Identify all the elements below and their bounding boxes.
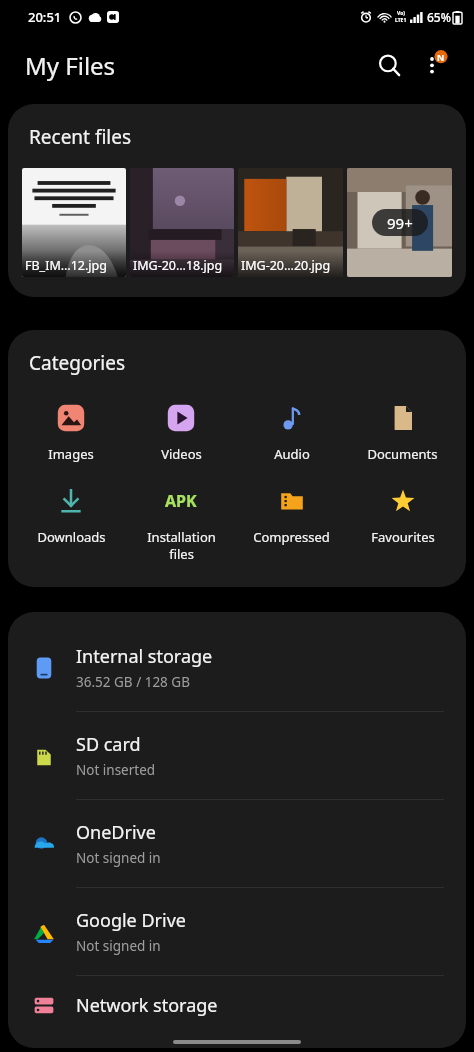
button[interactable]: Google Drive xyxy=(8,888,466,975)
button[interactable]: OneDrive xyxy=(8,800,466,887)
staticText: Network storage xyxy=(76,993,218,1018)
button[interactable]: Favourites xyxy=(347,481,458,548)
button[interactable]: 99+ xyxy=(347,168,452,277)
staticText: IMG-20…18.jpg xyxy=(133,257,223,274)
button[interactable]: SD card xyxy=(8,712,466,799)
staticText: IMG-20…20.jpg xyxy=(241,257,331,274)
staticText: SD card xyxy=(76,732,141,757)
staticText: Videos xyxy=(161,445,202,463)
staticText: OneDrive xyxy=(76,820,156,845)
button[interactable]: Downloads xyxy=(16,481,126,548)
staticText: Images xyxy=(48,445,94,463)
staticText: Compressed xyxy=(253,528,330,546)
staticText: 36.52 GB / 128 GB xyxy=(76,673,190,691)
button[interactable]: Videos xyxy=(126,398,236,465)
staticText: Internal storage xyxy=(76,644,213,669)
staticText: FB_IM…12.jpg xyxy=(25,257,107,274)
button[interactable]: Compressed xyxy=(236,481,347,548)
staticText: Installation files xyxy=(147,528,216,563)
staticText: LTE1 xyxy=(395,17,407,24)
staticText: APK xyxy=(165,490,197,512)
staticText: Vo) xyxy=(397,10,405,17)
staticText: Favourites xyxy=(371,528,435,546)
staticText: Not signed in xyxy=(76,849,161,867)
staticText: Categories xyxy=(29,350,125,376)
staticText: 20:51 xyxy=(28,8,62,26)
button[interactable]: Search xyxy=(366,42,412,88)
button[interactable]: Audio xyxy=(236,398,347,465)
staticText: N xyxy=(437,51,445,63)
staticText: Audio xyxy=(274,445,310,463)
staticText: Downloads xyxy=(37,528,106,546)
staticText: 99+ xyxy=(387,213,413,233)
button[interactable]: More options xyxy=(412,42,458,88)
staticText: Documents xyxy=(367,445,438,463)
staticText: Not inserted xyxy=(76,761,156,779)
button[interactable]: Documents xyxy=(347,398,458,465)
staticText: Recent files xyxy=(29,124,132,150)
button[interactable]: Images xyxy=(16,398,126,465)
staticText: Not signed in xyxy=(76,937,161,955)
button[interactable]: IMG-20…20.jpg xyxy=(238,168,343,277)
staticText: My Files xyxy=(25,49,116,82)
button[interactable]: Internal storage xyxy=(8,624,466,711)
button[interactable]: APK xyxy=(126,481,236,565)
staticText: Google Drive xyxy=(76,908,186,933)
button[interactable]: Network storage xyxy=(8,976,466,1034)
button[interactable]: FB_IM…12.jpg xyxy=(22,168,126,277)
button[interactable]: IMG-20…18.jpg xyxy=(130,168,234,277)
staticText: 65% xyxy=(427,9,451,25)
